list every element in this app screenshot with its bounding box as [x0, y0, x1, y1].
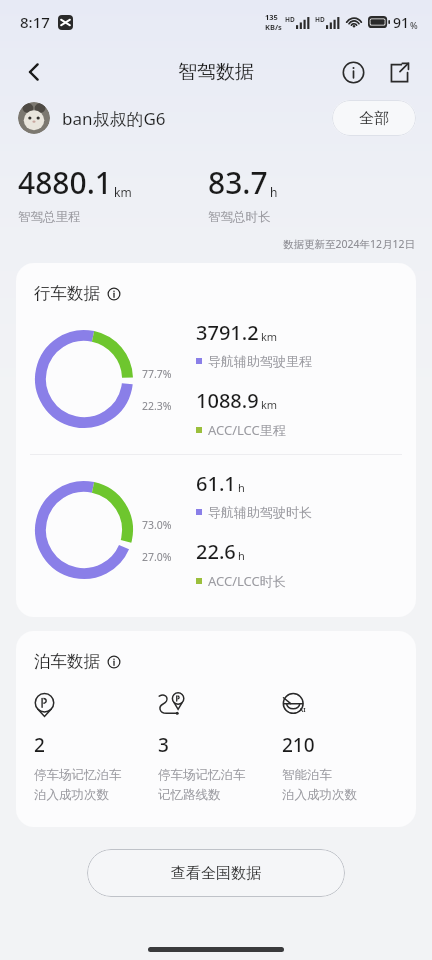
staticText: ACC/LCC里程: [208, 421, 286, 439]
staticText: 2: [34, 732, 45, 758]
staticText: 全部: [359, 109, 389, 128]
staticText: km: [261, 329, 278, 344]
button[interactable]: 查看全国数据: [87, 849, 345, 897]
button[interactable]: 泊车数据: [34, 651, 121, 672]
staticText: 3791.2: [196, 319, 259, 346]
staticText: 智驾总里程: [18, 209, 81, 225]
staticText: 智驾数据: [178, 60, 254, 84]
button[interactable]: Back: [12, 50, 56, 94]
staticText: 1088.9: [196, 387, 259, 414]
button[interactable]: Share: [378, 51, 420, 93]
button[interactable]: 行车数据: [34, 283, 121, 304]
staticText: 210: [282, 732, 315, 758]
button[interactable]: Information: [332, 51, 374, 93]
staticText: km: [261, 397, 278, 412]
staticText: 泊车数据: [34, 651, 100, 672]
staticText: ACC/LCC时长: [208, 572, 286, 590]
staticText: km: [114, 184, 132, 200]
staticText: 91: [393, 13, 410, 32]
staticText: h: [238, 548, 245, 563]
staticText: ban叔叔的G6: [62, 107, 166, 130]
staticText: HD: [315, 15, 325, 24]
button[interactable]: 3: [158, 690, 282, 803]
staticText: h: [238, 480, 245, 495]
staticText: h: [270, 184, 278, 200]
staticText: 记忆路线数: [158, 787, 221, 803]
staticText: 智能泊车: [282, 767, 332, 783]
staticText: 83.7: [208, 162, 268, 203]
staticText: 4880.1: [18, 162, 112, 203]
staticText: 8:17: [20, 12, 50, 32]
staticText: 泊入成功次数: [282, 787, 357, 803]
staticText: 导航辅助驾驶时长: [208, 504, 312, 520]
staticText: 73.0%: [142, 518, 172, 532]
staticText: 智驾总时长: [208, 209, 271, 225]
staticText: 行车数据: [34, 283, 100, 304]
staticText: 27.0%: [142, 550, 172, 564]
button[interactable]: AI: [282, 690, 406, 803]
staticText: 3: [158, 732, 169, 758]
staticText: 22.6: [196, 538, 236, 565]
staticText: 135: [265, 12, 278, 22]
staticText: 停车场记忆泊车: [34, 767, 122, 783]
button[interactable]: 2: [34, 690, 158, 803]
staticText: 泊入成功次数: [34, 787, 109, 803]
staticText: 61.1: [196, 470, 236, 497]
button[interactable]: 全部: [332, 100, 416, 136]
staticText: HD: [285, 15, 295, 24]
staticText: AI: [299, 706, 306, 714]
staticText: 查看全国数据: [171, 864, 261, 883]
staticText: 数据更新至2024年12月12日: [283, 237, 416, 251]
staticText: 22.3%: [142, 399, 172, 413]
staticText: %: [410, 19, 418, 31]
staticText: 停车场记忆泊车: [158, 767, 246, 783]
staticText: 77.7%: [142, 367, 172, 381]
staticText: KB/s: [265, 22, 282, 32]
staticText: 导航辅助驾驶里程: [208, 353, 312, 369]
